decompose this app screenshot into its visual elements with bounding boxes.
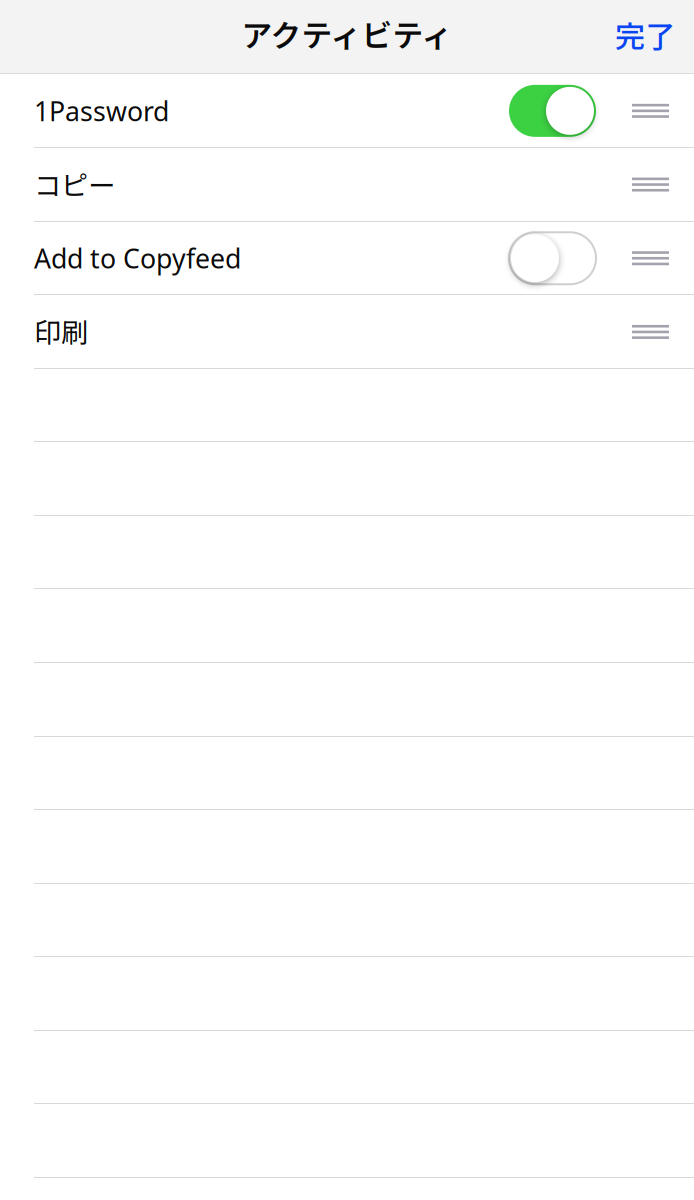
- button[interactable]: 完了: [615, 3, 694, 70]
- button[interactable]: Reorder 印刷: [632, 295, 669, 369]
- button[interactable]: Add to Copyfeed: [0, 221, 509, 295]
- staticText: コピー: [34, 164, 115, 203]
- staticText: 1Password: [34, 93, 169, 128]
- button[interactable]: コピー: [0, 148, 632, 221]
- staticText: 印刷: [34, 311, 88, 351]
- button[interactable]: 印刷: [0, 295, 632, 369]
- button[interactable]: Add to Copyfeed switch, off: [509, 232, 596, 284]
- staticText: アクティビティ: [241, 11, 452, 56]
- button[interactable]: Reorder コピー: [632, 148, 669, 221]
- staticText: Add to Copyfeed: [34, 240, 241, 276]
- button[interactable]: 1Password: [0, 74, 509, 148]
- button[interactable]: Reorder 1Password: [632, 74, 669, 148]
- button[interactable]: Reorder Add to Copyfeed: [632, 221, 669, 295]
- button[interactable]: 1Password switch, on: [509, 85, 596, 137]
- staticText: 完了: [615, 13, 675, 56]
